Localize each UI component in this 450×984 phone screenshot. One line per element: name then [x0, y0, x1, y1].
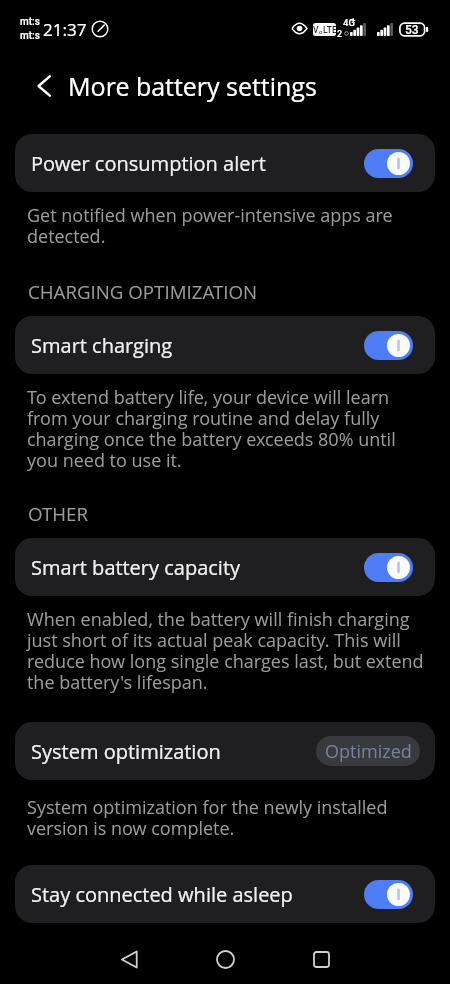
staticText: mt:s	[20, 30, 40, 42]
button[interactable]: Optimized	[316, 736, 420, 766]
staticText: CHARGING OPTIMIZATION	[28, 284, 258, 303]
staticText: Power consumption alert	[31, 150, 364, 177]
staticText: 2	[337, 29, 343, 40]
staticText: +	[351, 16, 356, 25]
button[interactable]: Back	[81, 935, 177, 984]
button[interactable]: Smart battery capacity	[15, 538, 435, 596]
button[interactable]: Navigate up	[32, 73, 58, 99]
button[interactable]: Toggle on	[364, 880, 413, 909]
button[interactable]: Home	[177, 935, 273, 984]
staticText: o	[319, 28, 323, 35]
staticText: To extend battery life, your device will…	[27, 388, 427, 472]
staticText: Smart charging	[31, 332, 364, 359]
staticText: LTE	[323, 25, 336, 35]
button[interactable]: Toggle on	[364, 331, 413, 360]
staticText: 4G	[343, 18, 355, 28]
button[interactable]: Toggle on	[364, 553, 413, 582]
button[interactable]: Recent apps	[273, 935, 369, 984]
staticText: Optimized	[325, 739, 412, 764]
button[interactable]: Stay connected while asleep	[15, 865, 435, 923]
button[interactable]: System optimization	[15, 722, 435, 780]
staticText: System optimization	[31, 738, 316, 765]
button[interactable]: Toggle on	[364, 149, 413, 178]
staticText: 53	[405, 23, 419, 37]
staticText: Get notified when power-intensive apps a…	[27, 206, 427, 248]
staticText: When enabled, the battery will finish ch…	[27, 610, 427, 694]
staticText: OTHER	[28, 506, 89, 525]
staticText: System optimization for the newly instal…	[27, 798, 427, 840]
staticText: Stay connected while asleep	[31, 881, 364, 908]
staticText: mt:s	[20, 16, 40, 28]
button[interactable]: Power consumption alert	[15, 134, 435, 192]
staticText: 21:37	[43, 18, 87, 41]
staticText: V	[313, 25, 319, 35]
staticText: More battery settings	[68, 69, 317, 103]
button[interactable]: Smart charging	[15, 316, 435, 374]
staticText: Smart battery capacity	[31, 554, 364, 581]
